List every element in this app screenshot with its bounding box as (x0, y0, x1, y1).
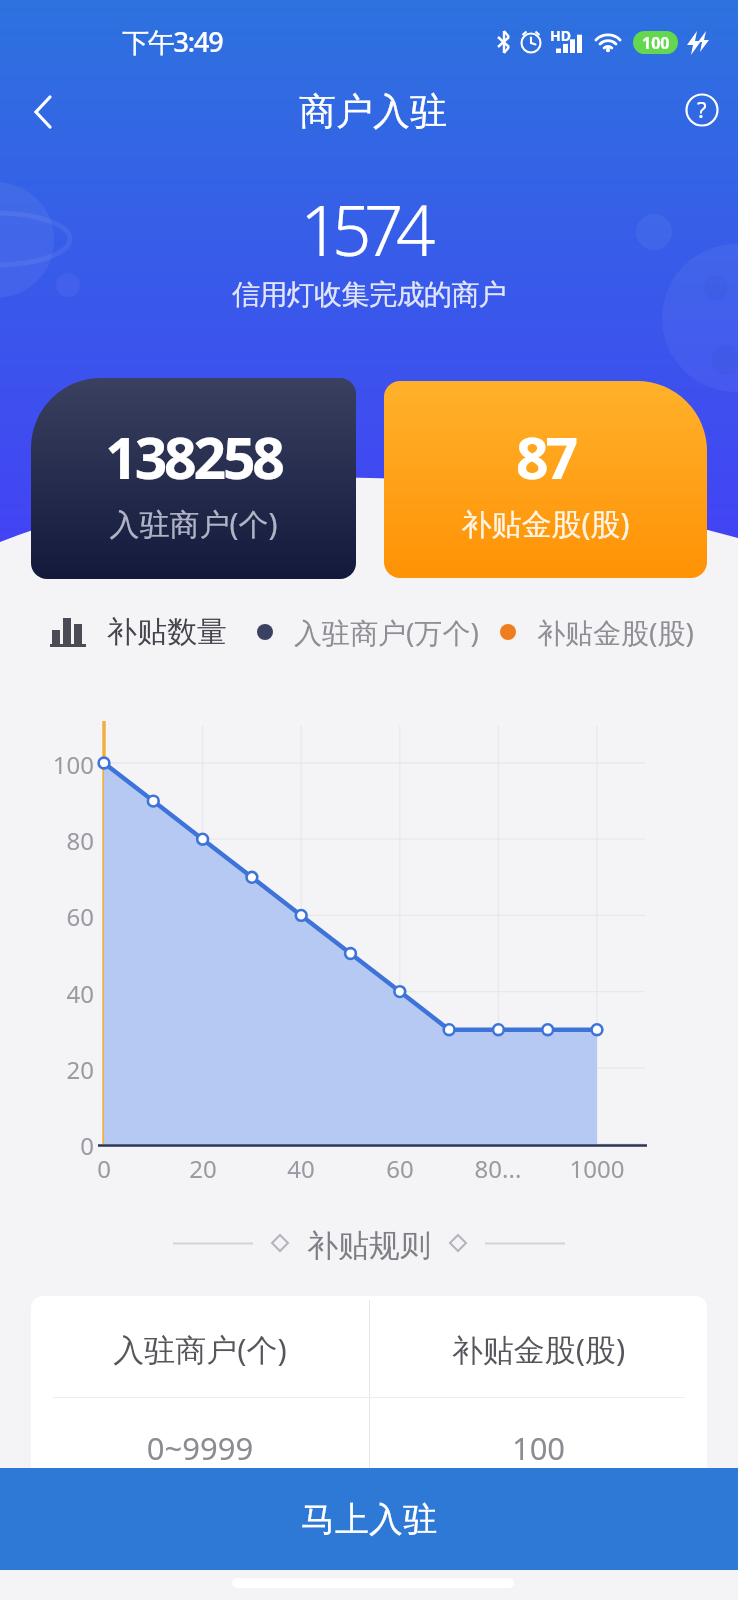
staticText: 138258 (31, 418, 356, 496)
staticText: 40 (14, 977, 94, 1010)
staticText: 0~9999 (31, 1427, 369, 1469)
staticText: 80 (14, 824, 94, 857)
staticText: 40 (251, 1152, 351, 1185)
staticText: 入驻商户(个) (31, 1328, 369, 1370)
staticText: 20 (14, 1053, 94, 1086)
button[interactable]: 87 (384, 381, 707, 578)
staticText: 0 (14, 1129, 94, 1162)
button[interactable]: 马上入驻 (0, 1468, 738, 1570)
staticText: 87 (384, 418, 707, 496)
staticText: 补贴金股(股) (384, 503, 707, 544)
staticText: 信用灯收集完成的商户 (0, 277, 738, 312)
staticText: 60 (14, 900, 94, 933)
staticText: 下午3:49 (122, 23, 223, 60)
staticText: 60 (350, 1152, 450, 1185)
staticText: 1000 (547, 1152, 647, 1185)
staticText: ? (697, 94, 707, 124)
staticText: 100 (14, 748, 94, 781)
button[interactable]: Back (12, 80, 76, 144)
staticText: 20 (153, 1152, 253, 1185)
staticText: HD (550, 26, 571, 45)
staticText: 100 (642, 32, 670, 54)
staticText: 补贴金股(股) (370, 1328, 707, 1370)
staticText: 0 (54, 1152, 154, 1185)
button[interactable]: Help (670, 78, 734, 142)
staticText: 补贴金股(股) (537, 613, 694, 651)
staticText: 入驻商户(个) (31, 503, 356, 544)
staticText: 马上入驻 (301, 1498, 437, 1541)
staticText: 80... (448, 1152, 548, 1185)
staticText: 100 (370, 1427, 707, 1469)
staticText: 补贴数量 (107, 613, 227, 651)
staticText: 入驻商户(万个) (294, 613, 479, 651)
staticText: 补贴规则 (307, 1226, 431, 1260)
button[interactable]: 138258 (31, 378, 356, 579)
staticText: 1574 (0, 182, 733, 276)
staticText: 商户入驻 (299, 88, 447, 135)
